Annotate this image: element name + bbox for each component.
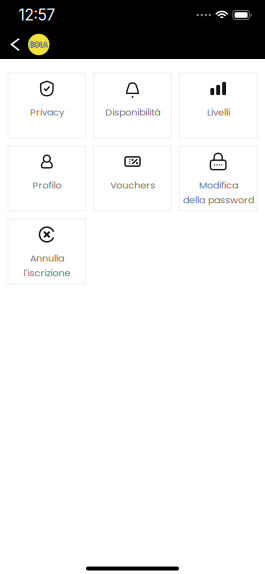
button[interactable]: Modifica della password [179,146,257,211]
staticText: BOLA [30,39,48,50]
staticText: BOLA [30,40,48,50]
staticText: Annulla l'iscrizione [23,251,70,280]
button[interactable]: Disponibilità [94,73,171,138]
button[interactable]: Back [0,34,28,55]
staticText: BOLA [30,39,48,49]
staticText: BOLA [30,39,48,50]
staticText: BOLA [29,39,47,50]
button[interactable]: Vouchers [94,146,171,211]
button[interactable]: Privacy [8,73,86,138]
staticText: 12:57 [18,6,55,24]
staticText: Modifica della password [183,178,254,207]
button[interactable]: Profilo [8,146,86,211]
staticText: Vouchers [110,178,155,192]
staticText: Disponibilità [105,105,160,119]
button[interactable]: Livelli [179,73,257,138]
staticText: Livelli [207,105,230,119]
staticText: Profilo [32,178,61,192]
button[interactable]: Bola home [28,34,49,55]
button[interactable]: Annulla l'iscrizione [8,219,86,284]
staticText: Privacy [30,105,64,119]
